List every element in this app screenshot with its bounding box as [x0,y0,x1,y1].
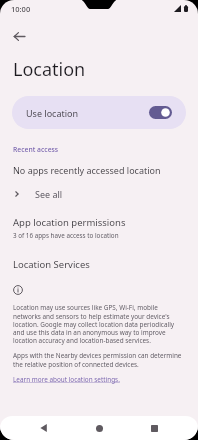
staticText: No apps recently accessed location [13,164,161,176]
button[interactable]: Learn more about location settings. [13,375,120,384]
staticText: 3 of 16 apps have access to location [13,231,119,240]
button[interactable]: See all [0,184,198,204]
staticText: Location Services [13,258,90,271]
staticText: Location [13,57,86,82]
button[interactable]: Recent apps [144,418,164,438]
staticText: Use location [26,107,79,119]
button[interactable]: Home [89,418,109,438]
staticText: App location permissions [13,216,126,229]
button[interactable]: Use location [12,96,186,129]
button[interactable]: App location permissions [0,214,198,242]
button[interactable]: Location Services [0,256,198,273]
button[interactable]: Back [34,418,54,438]
staticText: Recent access [13,145,59,154]
staticText: 10:00 [11,4,31,14]
staticText: Location may use sources like GPS, Wi-Fi… [13,303,185,344]
staticText: See all [35,188,63,200]
staticText: Apps with the Nearby devices permission … [13,351,185,368]
staticText: Learn more about location settings. [13,375,120,384]
button[interactable]: Back [6,23,32,49]
